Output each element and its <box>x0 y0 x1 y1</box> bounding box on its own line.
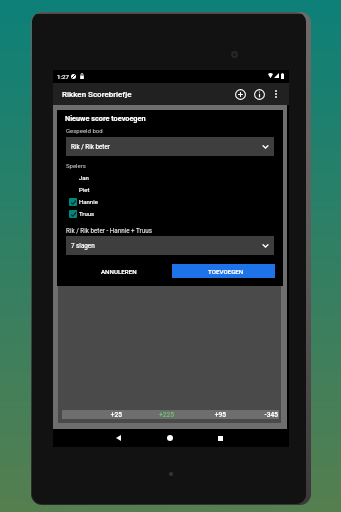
button[interactable]: Piet <box>57 183 283 195</box>
staticText: Truus <box>79 210 95 217</box>
button[interactable]: Rik / Rik beter <box>66 137 274 156</box>
button[interactable]: Jan <box>57 171 283 183</box>
button[interactable]: ANNULEREN <box>64 264 167 278</box>
staticText: Jan <box>79 174 89 181</box>
staticText: +225 <box>159 411 174 419</box>
staticText: Gespeeld bod <box>66 127 103 134</box>
button[interactable]: Hannie <box>57 195 283 207</box>
button[interactable]: Truus <box>57 207 283 219</box>
staticText: -345 <box>264 411 278 419</box>
staticText: +25 <box>110 411 122 419</box>
staticText: Spelers <box>66 162 86 169</box>
button[interactable]: More options <box>267 83 284 105</box>
button[interactable]: 7 slagen <box>66 236 274 255</box>
button[interactable]: Add score <box>231 83 250 105</box>
staticText: Rikken Scorebriefje <box>62 90 132 99</box>
staticText: +95 <box>214 411 226 419</box>
staticText: Piet <box>79 186 90 193</box>
staticText: Nieuwe score toevoegen <box>65 114 146 123</box>
staticText: 7 slagen <box>71 242 95 249</box>
staticText: Rik / Rik beter <box>71 143 110 150</box>
button[interactable]: TOEVOEGEN <box>172 264 275 278</box>
staticText: 1:27 <box>57 73 69 80</box>
button[interactable]: Back <box>107 429 129 447</box>
staticText: TOEVOEGEN <box>208 268 244 275</box>
staticText: Rik / Rik beter - Hannie + Truus <box>66 227 152 234</box>
button[interactable]: Home <box>159 429 181 447</box>
button[interactable]: Info <box>250 83 269 105</box>
button[interactable]: Recent apps <box>209 429 231 447</box>
staticText: Hannie <box>79 198 98 205</box>
staticText: ANNULEREN <box>101 268 137 275</box>
